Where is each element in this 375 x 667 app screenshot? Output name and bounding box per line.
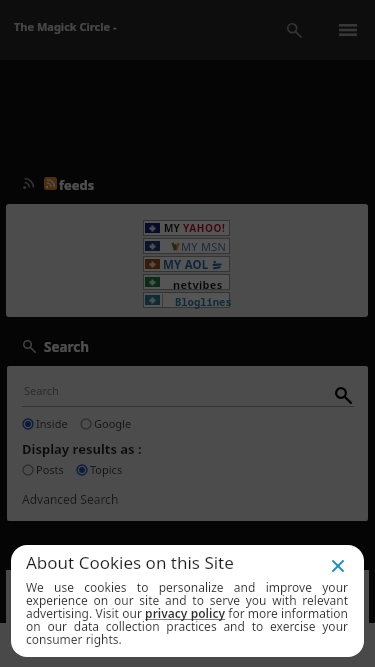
button[interactable]: netvibes bbox=[144, 275, 229, 289]
staticText: MY MSN bbox=[181, 239, 227, 253]
staticText: Display results as : bbox=[22, 440, 142, 458]
button[interactable]: Close bbox=[324, 552, 352, 580]
staticText: About Cookies on this Site bbox=[26, 551, 234, 574]
button[interactable]: msn bbox=[144, 239, 229, 253]
staticText: YAHOO! bbox=[183, 221, 226, 235]
button[interactable]: Menu bbox=[326, 8, 370, 52]
staticText: Bloglines bbox=[175, 295, 232, 309]
button[interactable]: Inside bbox=[22, 416, 68, 431]
staticText: The Magick Circle - bbox=[14, 19, 117, 34]
button[interactable]: Posts bbox=[22, 462, 64, 477]
button[interactable]: yahoo bbox=[144, 221, 229, 235]
staticText: MY AOL bbox=[163, 257, 209, 271]
button[interactable]: Search bbox=[272, 8, 316, 52]
button[interactable]: Google bbox=[80, 416, 132, 431]
staticText: Topics bbox=[90, 462, 123, 477]
staticText: MY bbox=[164, 221, 180, 235]
staticText: feeds bbox=[59, 176, 95, 194]
button[interactable]: feeds bbox=[44, 176, 95, 194]
button[interactable]: Advanced Search bbox=[22, 491, 119, 507]
button[interactable]: Search bbox=[44, 338, 90, 356]
button[interactable]: aol bbox=[144, 257, 229, 271]
staticText: netvibes bbox=[173, 277, 223, 291]
button[interactable]: Topics bbox=[76, 462, 123, 477]
staticText: Inside bbox=[36, 416, 68, 431]
staticText: Search bbox=[24, 383, 59, 398]
staticText: Google bbox=[94, 416, 132, 431]
staticText: We use cookies to personalize and improv… bbox=[26, 579, 348, 648]
button[interactable]: Submit search bbox=[328, 380, 358, 410]
button[interactable]: bloglines bbox=[144, 293, 229, 307]
staticText: Posts bbox=[36, 462, 64, 477]
